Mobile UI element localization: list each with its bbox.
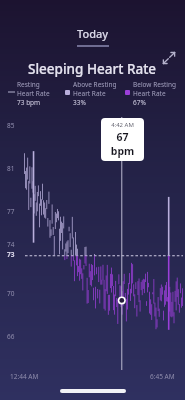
staticText: 74 xyxy=(7,240,15,249)
staticText: Heart Rate xyxy=(133,89,166,98)
button[interactable]: Expand chart xyxy=(158,47,180,69)
staticText: 12:44 AM xyxy=(10,372,39,381)
button[interactable]: Below Resting xyxy=(124,80,181,107)
staticText: Above Resting xyxy=(73,80,117,89)
staticText: 73 bpm xyxy=(17,98,41,107)
staticText: 33% xyxy=(73,98,86,107)
staticText: Today xyxy=(77,26,109,41)
staticText: 85 xyxy=(7,121,15,130)
staticText: Sleeping Heart Rate xyxy=(28,60,157,78)
staticText: 81 xyxy=(7,164,15,173)
staticText: 6:45 AM xyxy=(150,372,175,381)
staticText: 73 xyxy=(7,250,15,259)
staticText: 77 xyxy=(7,207,15,216)
staticText: 4:42 AM xyxy=(111,121,134,129)
staticText: Resting xyxy=(17,80,40,89)
staticText: 67% xyxy=(133,98,146,107)
button[interactable]: Above Resting xyxy=(64,80,124,107)
staticText: 70 xyxy=(7,289,15,298)
button[interactable]: Today xyxy=(71,26,115,47)
button[interactable]: Resting xyxy=(8,80,64,107)
button[interactable]: 4:42 AM xyxy=(101,118,144,161)
staticText: Heart Rate xyxy=(73,89,106,98)
staticText: 66 xyxy=(7,332,15,341)
staticText: 67 bpm xyxy=(104,130,141,158)
staticText: Below Resting xyxy=(133,80,177,89)
staticText: Heart Rate xyxy=(17,89,50,98)
